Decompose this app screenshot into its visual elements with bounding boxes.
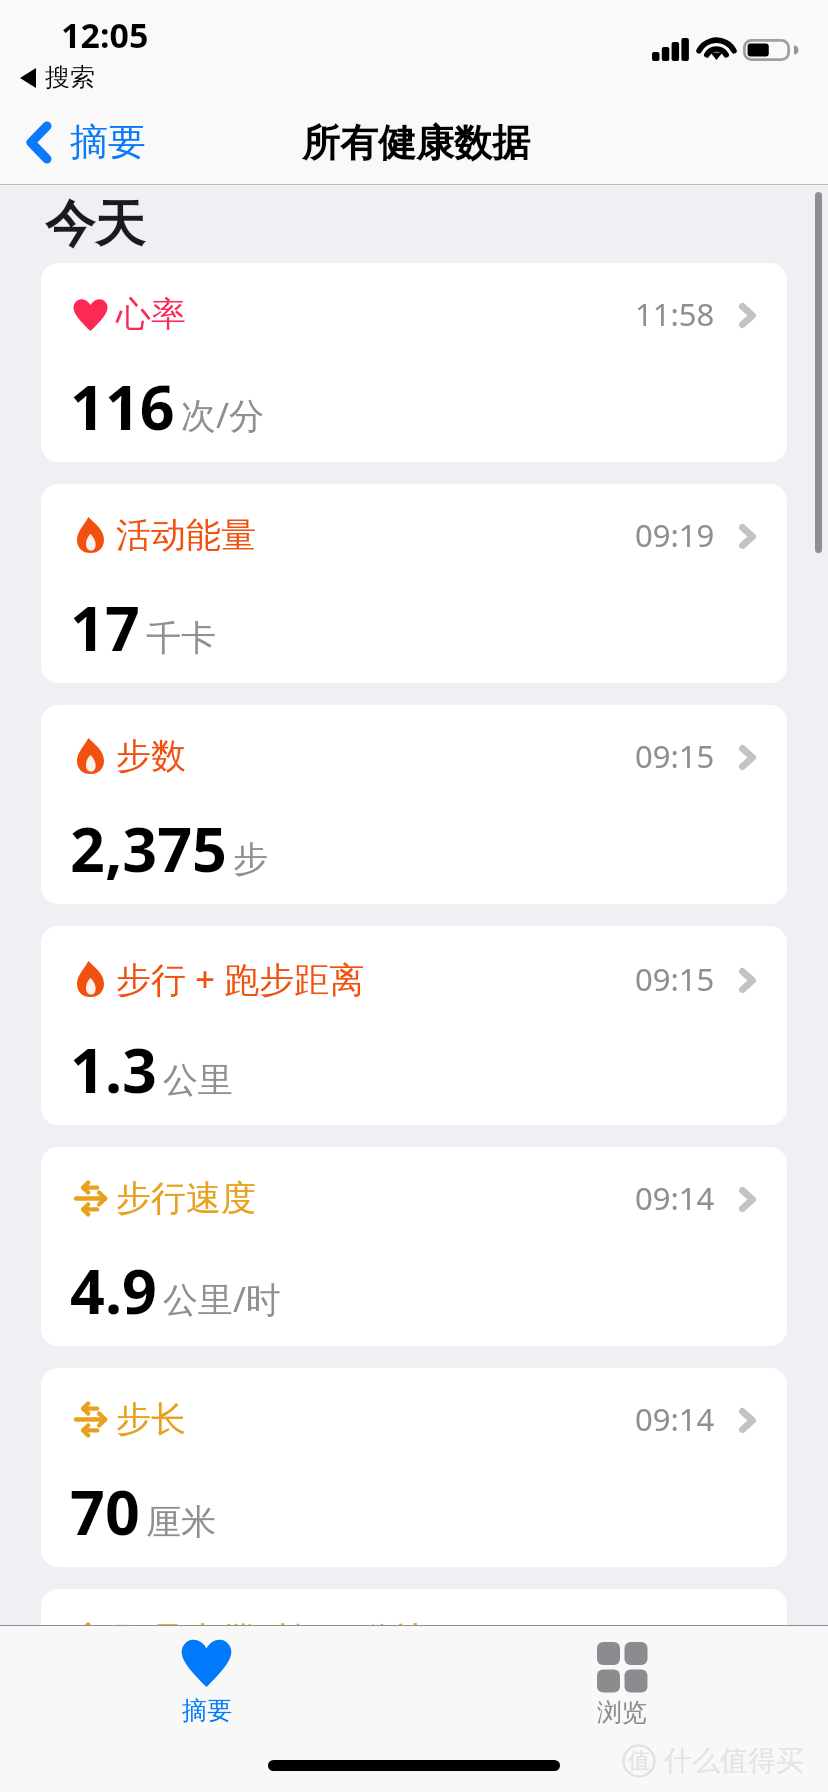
button[interactable]: 摘要 — [0, 110, 160, 174]
staticText: 步 — [233, 837, 268, 881]
staticText: 17 — [70, 586, 140, 669]
button[interactable]: 搜索 — [20, 62, 95, 93]
staticText: 公里/时 — [163, 1275, 282, 1323]
button[interactable]: 摘要 — [123, 1626, 290, 1734]
staticText: 12:05 — [61, 12, 149, 58]
staticText: 1.3 — [70, 1028, 157, 1111]
staticText: 千卡 — [146, 616, 216, 660]
staticText: 70 — [70, 1470, 140, 1553]
staticText: 心率 — [116, 292, 186, 336]
staticText: 公里 — [163, 1058, 233, 1102]
staticText: 28.5 — [70, 1691, 192, 1774]
button[interactable]: 步数 — [41, 705, 787, 904]
staticText: 所有健康数据 — [302, 119, 530, 167]
button[interactable]: 双足支撑时间百分比 — [41, 1589, 787, 1788]
staticText: 活动能量 — [116, 513, 256, 557]
staticText: 步行 + 跑步距离 — [116, 955, 365, 1003]
staticText: 2,375 — [70, 807, 227, 890]
staticText: 步数 — [116, 734, 186, 778]
staticText: 什么值得买 — [664, 1743, 804, 1778]
staticText: 09:15 — [635, 735, 715, 777]
staticText: 09:19 — [635, 514, 715, 556]
button[interactable]: 步行速度 — [41, 1147, 787, 1346]
staticText: 搜索 — [45, 62, 95, 93]
button[interactable]: 步长 — [41, 1368, 787, 1567]
button[interactable]: 步行 + 跑步距离 — [41, 926, 787, 1125]
staticText: 摘要 — [182, 1695, 232, 1726]
staticText: 步长 — [116, 1397, 186, 1441]
staticText: 09:14 — [635, 1619, 715, 1661]
staticText: 今天 — [45, 193, 145, 256]
staticText: 双足支撑时间百分比 — [116, 1618, 431, 1662]
staticText: % — [198, 1717, 228, 1765]
staticText: 步行速度 — [116, 1176, 256, 1220]
staticText: 4.9 — [70, 1249, 157, 1332]
staticText: 09:14 — [635, 1398, 715, 1440]
staticText: 11:58 — [635, 293, 715, 335]
staticText: 09:15 — [635, 958, 715, 1000]
staticText: 厘米 — [146, 1500, 216, 1544]
staticText: 值 — [628, 1747, 650, 1775]
button[interactable]: 浏览 — [539, 1626, 705, 1736]
staticText: 摘要 — [70, 118, 146, 166]
staticText: 116 — [70, 365, 175, 448]
staticText: 09:14 — [635, 1177, 715, 1219]
staticText: 次/分 — [181, 391, 265, 439]
staticText: 浏览 — [597, 1697, 647, 1728]
button[interactable]: 活动能量 — [41, 484, 787, 683]
button[interactable]: 心率 — [41, 263, 787, 462]
